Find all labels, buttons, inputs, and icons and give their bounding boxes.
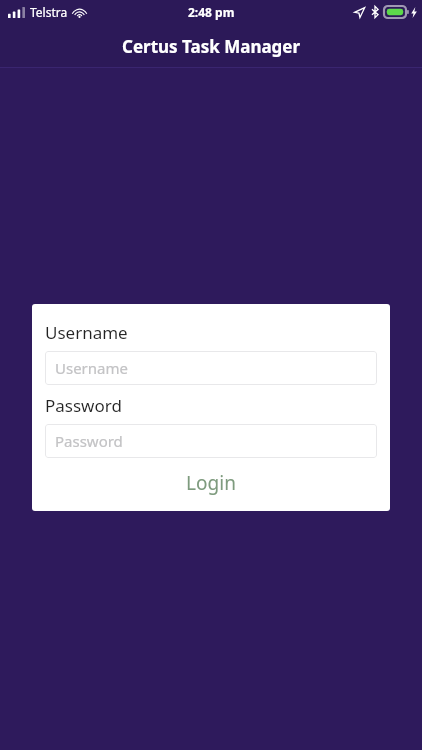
staticText: Username [45,321,128,344]
button[interactable]: Username [45,351,377,385]
button[interactable]: Password [45,424,377,458]
staticText: Certus Task Manager [122,35,301,58]
staticText: Login [186,470,236,496]
staticText: Telstra [30,4,68,20]
staticText: 2:48 pm [188,4,235,20]
staticText: Password [45,394,122,417]
staticText: Password [55,431,123,451]
button[interactable]: Login [45,464,377,502]
staticText: Username [55,358,128,378]
